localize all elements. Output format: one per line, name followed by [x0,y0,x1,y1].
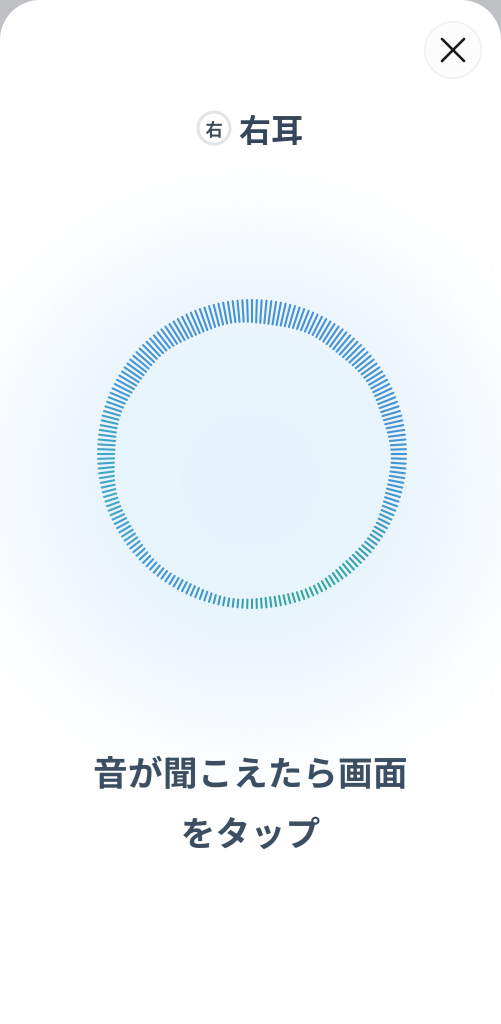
staticText: 右耳 [239,105,303,151]
staticText: 右 [205,116,222,141]
button[interactable]: 閉じる [424,21,482,79]
staticText: をタップ [180,806,320,856]
staticText: 音が聞こえたら画面 [93,746,408,796]
